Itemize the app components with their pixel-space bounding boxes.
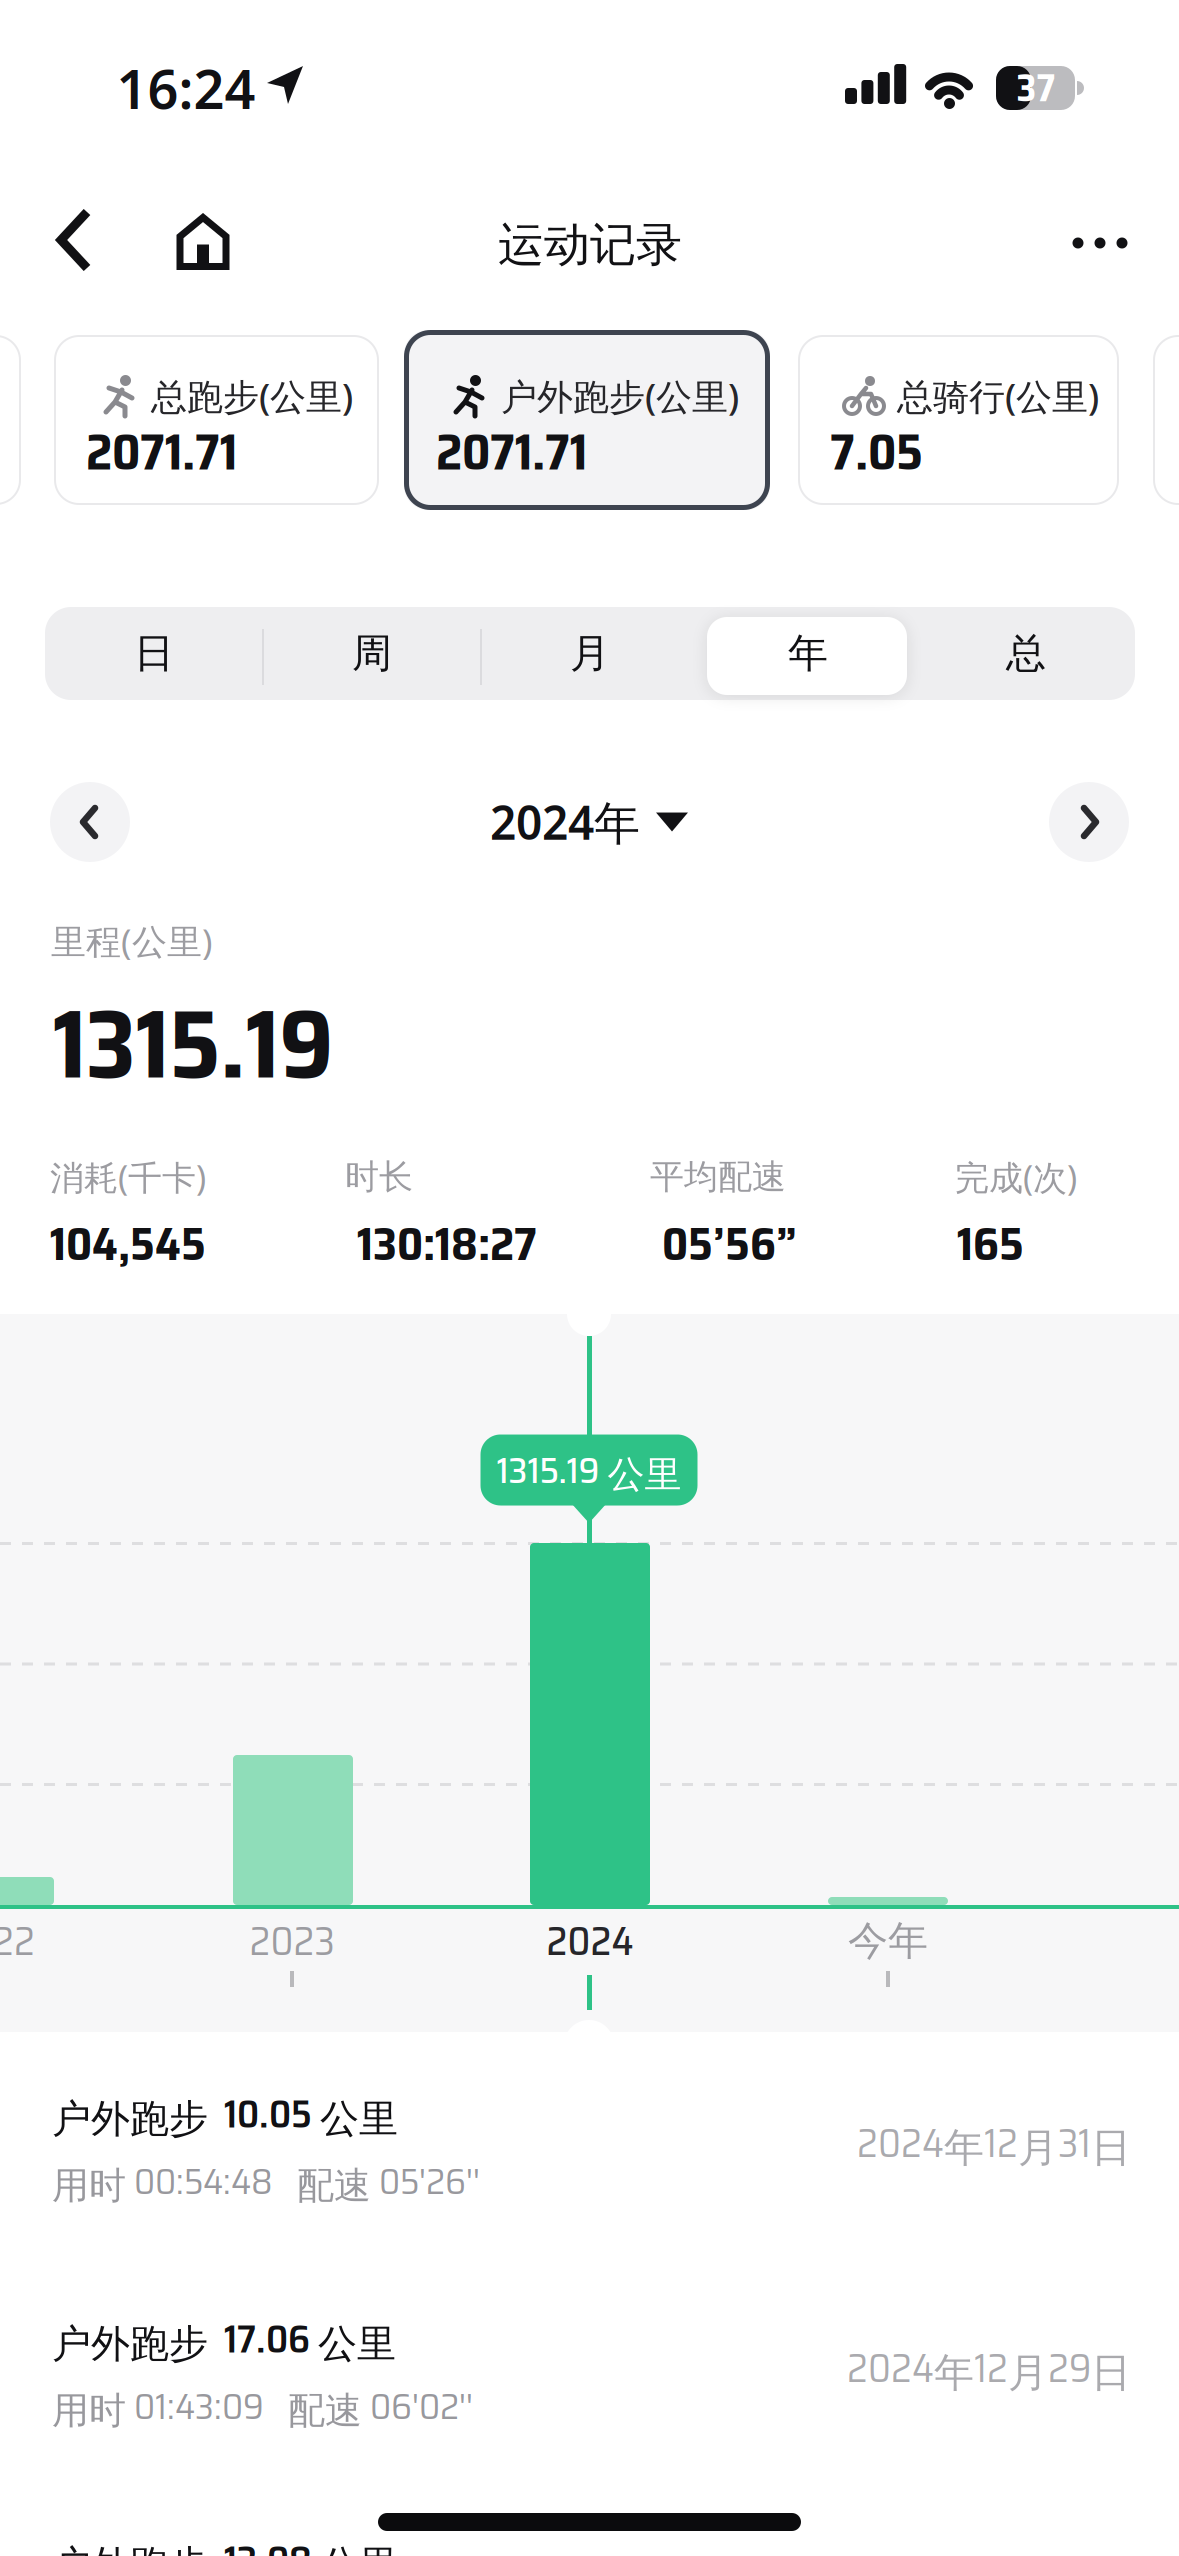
staticText: 日 — [134, 628, 174, 679]
staticText: 今年 — [848, 1916, 928, 1966]
staticText: 用时 01:43:09 配速 06'02'' — [52, 2377, 473, 2435]
button[interactable]: 年 — [713, 613, 903, 693]
button[interactable]: 总 — [931, 613, 1121, 693]
staticText: 05’56” — [662, 1208, 797, 1280]
staticText: 1315.19 — [53, 968, 334, 1119]
staticText: 16:24 — [116, 51, 255, 125]
staticText: 2024 — [546, 1909, 633, 1972]
staticText: 户外跑步 13.08 公里 — [52, 2529, 398, 2556]
staticText: 户外跑步 10.05 公里 — [52, 2083, 398, 2145]
button[interactable]: 户外跑步 10.05 公里 — [52, 2077, 1131, 2227]
staticText: 2023 — [249, 1909, 334, 1972]
button[interactable]: 2024年 — [490, 787, 688, 857]
staticText: 2024年 — [490, 791, 640, 853]
staticText: 104,545 — [50, 1208, 206, 1280]
button[interactable]: 总骑行(公里) — [798, 335, 1119, 505]
staticText: 户外跑步(公里) — [501, 371, 739, 420]
staticText: 总骑行(公里) — [897, 371, 1099, 420]
staticText: 消耗(千卡) — [50, 1154, 206, 1200]
staticText: 时长 — [345, 1156, 413, 1198]
button[interactable]: 户外跑步(公里) — [404, 330, 770, 510]
staticText: 年 — [788, 628, 828, 679]
button[interactable]: 周 — [277, 613, 467, 693]
staticText: 37 — [1016, 58, 1055, 118]
staticText: 总跑步(公里) — [151, 371, 353, 420]
button[interactable]: 总跑步(公里) — [54, 335, 379, 505]
button[interactable]: 户外跑步 13.08 公里 — [52, 2523, 1131, 2556]
staticText: 平均配速 — [650, 1156, 786, 1198]
staticText: 运动记录 — [498, 216, 682, 274]
staticText: 总 — [1006, 628, 1046, 679]
staticText: 用时 00:54:48 配速 05'26'' — [52, 2152, 480, 2210]
staticText: 2024年12月29日 — [847, 2336, 1131, 2399]
staticText: 里程(公里) — [51, 917, 213, 965]
staticText: 完成(次) — [955, 1154, 1077, 1200]
staticText: 22 — [0, 1909, 35, 1972]
staticText: 2071.71 — [86, 413, 237, 491]
staticText: 月 — [570, 628, 610, 679]
button[interactable]: Home — [177, 214, 229, 269]
button[interactable]: Previous year — [50, 782, 130, 862]
staticText: 165 — [957, 1208, 1024, 1280]
button[interactable]: 月 — [495, 613, 685, 693]
button[interactable]: Back — [59, 210, 93, 272]
staticText: 2024年12月31日 — [857, 2111, 1131, 2174]
button[interactable]: More — [1062, 218, 1138, 268]
button[interactable]: 日 — [59, 613, 249, 693]
staticText: 2071.71 — [436, 413, 587, 491]
button[interactable]: 户外跑步 17.06 公里 — [52, 2302, 1131, 2452]
staticText: 1315.19 公里 — [496, 1441, 681, 1499]
staticText: 7.05 — [830, 413, 923, 491]
staticText: 130:18:27 — [357, 1208, 537, 1280]
staticText: 户外跑步 17.06 公里 — [52, 2308, 396, 2370]
staticText: 周 — [352, 628, 392, 679]
button[interactable]: Next year — [1049, 782, 1129, 862]
